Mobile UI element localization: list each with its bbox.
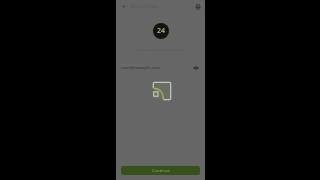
staticText: Security key xyxy=(130,3,159,10)
button[interactable]: More options xyxy=(193,2,202,11)
staticText: 24 xyxy=(157,26,166,36)
button[interactable]: Show code xyxy=(191,63,200,72)
staticText: Continue xyxy=(152,168,170,174)
button[interactable]: Code expires in 24 seconds xyxy=(153,23,169,39)
button[interactable]: Back xyxy=(119,2,128,11)
button[interactable]: Continue xyxy=(121,166,200,175)
staticText: user@example.com xyxy=(121,65,161,71)
